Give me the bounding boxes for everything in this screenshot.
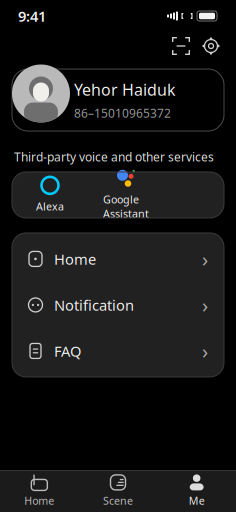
staticText: Home	[54, 249, 96, 269]
staticText: Yehor Haiduk	[74, 79, 176, 100]
staticText: 9:41	[18, 6, 46, 26]
staticText: ›	[202, 338, 208, 364]
button[interactable]: Yehor Haiduk	[12, 69, 224, 131]
staticText: Home	[24, 493, 54, 508]
staticText: ›	[202, 292, 208, 318]
button[interactable]: Home	[0, 471, 79, 511]
staticText: Third-party voice and other services	[14, 149, 214, 165]
staticText: Scene	[103, 493, 133, 508]
button[interactable]: Settings	[196, 32, 226, 60]
button[interactable]: FAQ	[12, 328, 224, 374]
staticText: ›	[202, 246, 208, 272]
button[interactable]: Alexa	[12, 178, 88, 212]
button[interactable]: Scene	[79, 471, 157, 511]
button[interactable]: Scan QR code	[166, 32, 196, 60]
staticText: 86–15010965372	[74, 105, 171, 121]
button[interactable]: Home	[12, 236, 224, 282]
staticText: Alexa	[36, 199, 64, 214]
staticText: FAQ	[54, 341, 81, 361]
button[interactable]: Google Assistant	[88, 178, 164, 212]
staticText: Google Assistant	[103, 192, 149, 221]
button[interactable]: Notification	[12, 282, 224, 328]
button[interactable]: Me	[157, 471, 236, 511]
staticText: Me	[189, 493, 205, 508]
staticText: Notification	[54, 295, 134, 315]
